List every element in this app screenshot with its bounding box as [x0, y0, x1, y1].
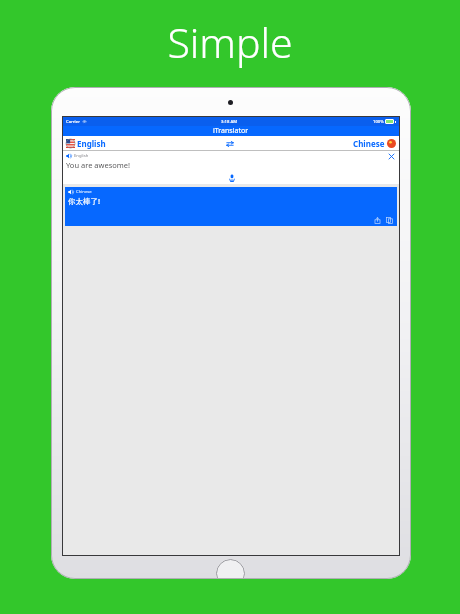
button[interactable]: Copy [385, 216, 394, 225]
staticText: Simple [0, 14, 460, 70]
staticText: Carrier [66, 119, 80, 125]
button[interactable]: Home [216, 559, 245, 579]
button[interactable]: Clear text [387, 152, 395, 160]
button[interactable]: English [66, 138, 106, 149]
staticText: Chinese [76, 189, 92, 195]
button[interactable]: Chinese [65, 187, 397, 226]
staticText: You are awesome! [66, 160, 131, 170]
staticText: 3:18 AM [221, 119, 238, 125]
staticText: Chinese [353, 138, 385, 149]
button[interactable]: Voice input [226, 172, 237, 183]
button[interactable]: Share [373, 216, 382, 225]
staticText: English [77, 138, 106, 149]
button[interactable]: Chinese [353, 138, 396, 149]
staticText: English [74, 153, 89, 159]
button[interactable]: Swap languages [223, 137, 236, 150]
staticText: iTranslator [213, 126, 249, 136]
staticText: 100% [373, 119, 384, 125]
staticText: 你太棒了! [68, 196, 101, 206]
